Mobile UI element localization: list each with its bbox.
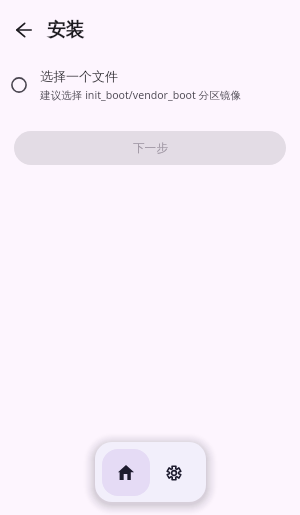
staticText: 安装 [47, 18, 84, 41]
staticText: 建议选择 init_boot/vendor_boot 分区镜像 [40, 88, 241, 102]
button[interactable]: Home [102, 449, 150, 496]
button[interactable]: 选择一个文件 [0, 66, 300, 104]
button[interactable]: Settings [150, 449, 198, 496]
button[interactable]: 下一步 [14, 131, 286, 165]
staticText: 选择一个文件 [40, 68, 118, 84]
button[interactable]: Back [5, 11, 42, 48]
staticText: 下一步 [133, 141, 168, 156]
